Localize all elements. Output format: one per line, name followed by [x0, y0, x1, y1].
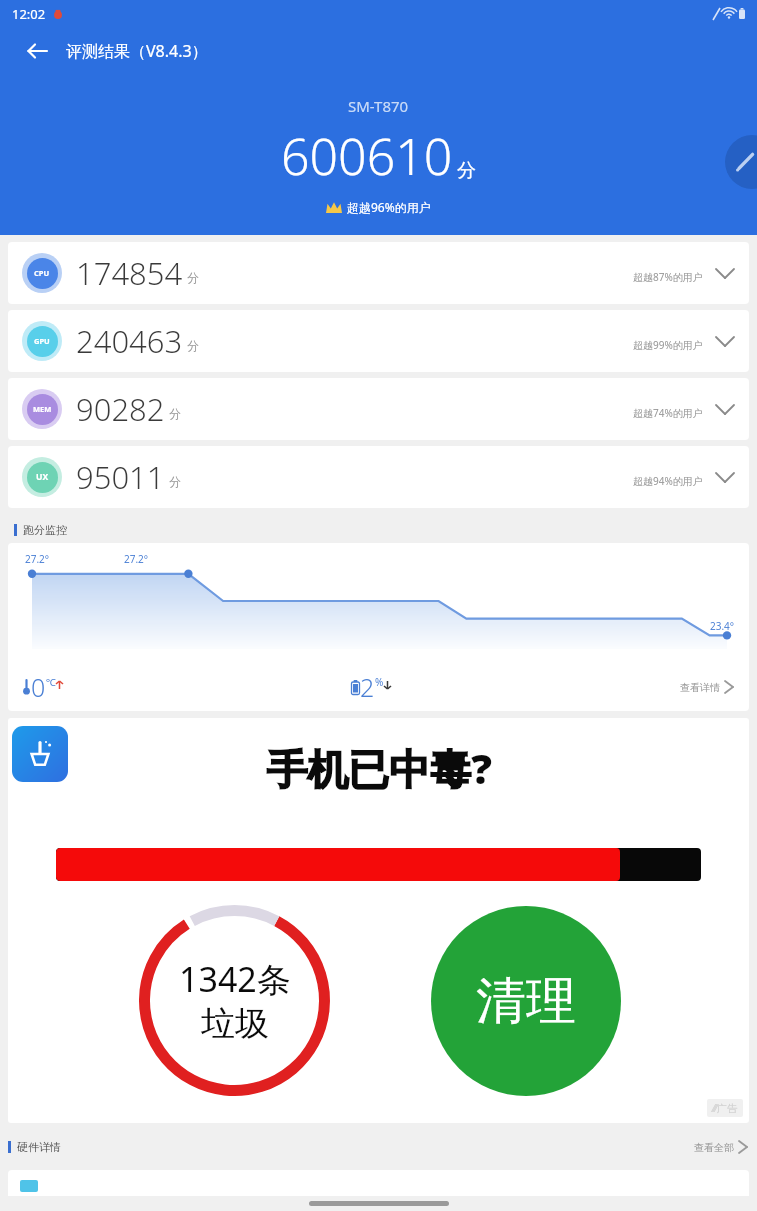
staticText: 跑分监控 [23, 523, 67, 537]
staticText: 清理 [476, 970, 576, 1033]
staticText: 分 [187, 270, 199, 285]
button[interactable]: 查看详情 [680, 678, 735, 696]
button[interactable]: 清理 [431, 906, 621, 1096]
staticText: 27.2° [25, 552, 50, 566]
staticText: ℃ [46, 675, 56, 689]
staticText: 12:02 [12, 5, 46, 23]
button[interactable]: 手机已中毒? [8, 718, 749, 1123]
staticText: 手机已中毒? [266, 740, 492, 796]
staticText: 2 [360, 670, 375, 704]
staticText: 垃圾 [201, 1002, 269, 1045]
staticText: 分 [169, 474, 181, 489]
staticText: 查看全部 [694, 1141, 734, 1154]
staticText: 23.4° [710, 619, 735, 633]
staticText: 超越87%的用户 [633, 270, 703, 284]
button[interactable]: UX [8, 446, 749, 508]
staticText: 90282 [76, 388, 165, 430]
staticText: 评测结果（V8.4.3） [66, 40, 208, 62]
staticText: 600610 [281, 122, 453, 190]
staticText: 查看详情 [680, 681, 720, 694]
button[interactable]: Back [18, 32, 56, 70]
staticText: 超越74%的用户 [633, 406, 703, 420]
staticText: 1342条 [179, 956, 291, 1002]
staticText: UX [36, 471, 49, 483]
staticText: 超越99%的用户 [633, 338, 703, 352]
button[interactable]: 硬件详情 [8, 1129, 749, 1165]
staticText: 95011 [76, 456, 165, 498]
button[interactable]: GPU [8, 310, 749, 372]
staticText: 分 [457, 159, 476, 183]
staticText: 超越94%的用户 [633, 474, 703, 488]
button[interactable]: Edit [725, 135, 757, 189]
staticText: SM-T870 [348, 96, 409, 116]
staticText: CPU [34, 268, 50, 278]
staticText: MEM [33, 404, 52, 414]
staticText: 0 [31, 670, 46, 704]
staticText: GPU [34, 336, 50, 346]
staticText: 超越96%的用户 [347, 199, 431, 215]
button[interactable]: CPU [8, 242, 749, 304]
staticText: 27.2° [124, 552, 149, 566]
staticText: 分 [169, 406, 181, 421]
staticText: 174854 [76, 252, 183, 294]
staticText: 分 [187, 338, 199, 353]
staticText: 硬件详情 [17, 1140, 61, 1154]
button[interactable]: MEM [8, 378, 749, 440]
staticText: ⁄⁄⁄广告 [713, 1101, 737, 1115]
staticText: 240463 [76, 320, 183, 362]
staticText: % [375, 675, 384, 689]
